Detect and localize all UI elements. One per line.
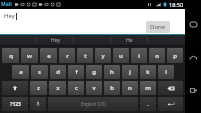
staticText: n [128,84,132,92]
button[interactable]: Hey [37,35,74,45]
staticText: c [75,84,78,92]
button[interactable]: m [140,81,156,95]
button[interactable]: v [86,81,102,95]
staticText: u [119,52,123,60]
staticText: ?123 [10,101,21,108]
staticText: He [126,37,133,44]
button[interactable]: Shift [2,81,28,95]
staticText: v [92,84,96,92]
staticText: 18:50 [169,1,184,8]
button[interactable]: k [140,65,156,79]
staticText: m [145,84,151,92]
button[interactable]: b [104,81,120,95]
staticText: Hey [4,12,15,20]
button[interactable]: y [95,48,111,63]
button[interactable]: d [50,65,66,79]
button[interactable]: t [77,48,93,63]
button[interactable]: Home [185,47,201,67]
button[interactable]: c [68,81,84,95]
staticText: i [138,52,140,60]
staticText: a [19,68,23,76]
button[interactable]: Delete [158,81,183,95]
staticText: o [155,52,159,60]
button[interactable]: Recent apps [185,80,201,100]
staticText: q [9,52,13,60]
staticText: l [165,68,167,76]
staticText: e [47,52,51,60]
button[interactable]: x [49,81,66,95]
staticText: p [173,52,177,60]
button[interactable]: w [21,48,38,63]
button[interactable]: Space [48,97,138,111]
staticText: s [38,68,41,76]
button[interactable]: z [30,81,47,95]
button[interactable]: u [113,48,129,63]
staticText: English (US) [81,101,106,107]
button[interactable]: Period [140,97,156,111]
button[interactable]: l [158,65,174,79]
staticText: . [147,100,149,108]
staticText: t [84,52,87,60]
staticText: k [146,68,150,76]
button[interactable]: a [12,65,29,79]
staticText: w [27,52,32,60]
button[interactable]: o [149,48,165,63]
staticText: Hey [51,37,60,44]
button[interactable]: g [86,65,102,79]
button[interactable]: h [104,65,120,79]
button[interactable] [74,35,111,45]
button[interactable]: Back [185,14,201,34]
button[interactable]: Symbols [2,97,28,111]
button[interactable]: Voice input [30,97,46,111]
button[interactable]: e [40,48,57,63]
button[interactable]: i [131,48,147,63]
button[interactable]: f [68,65,84,79]
button[interactable]: Hey [0,9,185,35]
staticText: x [56,84,60,92]
staticText: y [101,52,105,60]
button[interactable]: Done [146,21,170,33]
button[interactable]: He [111,35,148,45]
button[interactable]: Enter [158,97,183,111]
staticText: b [110,84,114,92]
staticText: d [56,68,60,76]
staticText: Done [150,23,166,31]
button[interactable]: q [2,48,19,63]
staticText: Mail [1,1,12,8]
button[interactable]: p [167,48,183,63]
staticText: r [66,52,69,60]
staticText: j [129,68,131,76]
button[interactable]: j [122,65,138,79]
button[interactable]: n [122,81,138,95]
button[interactable] [0,35,37,45]
staticText: h [110,68,114,76]
button[interactable]: s [31,65,48,79]
staticText: z [37,84,40,92]
staticText: g [92,68,96,76]
button[interactable]: r [59,48,75,63]
staticText: f [75,68,78,76]
